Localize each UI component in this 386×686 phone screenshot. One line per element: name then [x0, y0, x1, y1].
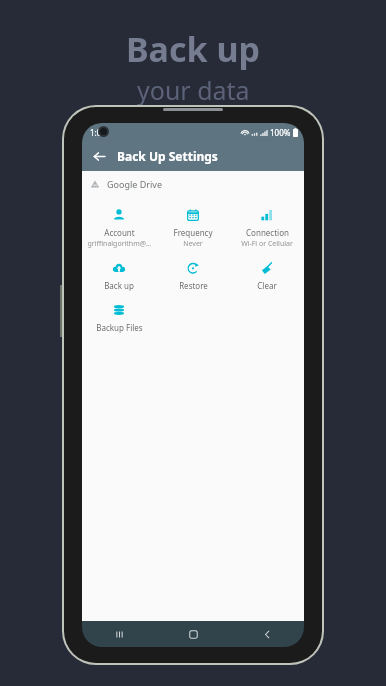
staticText: 1:00: [90, 127, 106, 138]
button[interactable]: Back: [230, 621, 304, 647]
staticText: Wi-Fi or Cellular: [241, 239, 293, 249]
button[interactable]: Restore: [156, 254, 230, 296]
button[interactable]: Back up: [82, 254, 156, 296]
staticText: Account: [104, 227, 135, 238]
staticText: griffinalgorithm@…: [87, 239, 152, 249]
staticText: Restore: [179, 280, 208, 291]
staticText: Back Up Settings: [117, 148, 218, 164]
staticText: Back up: [126, 26, 261, 72]
button[interactable]: Connection: [230, 201, 304, 254]
button[interactable]: Recent apps: [82, 621, 156, 647]
staticText: Google Drive: [107, 178, 162, 190]
button[interactable]: Home: [156, 621, 230, 647]
staticText: Connection: [246, 227, 289, 238]
staticText: Back up: [104, 280, 134, 291]
staticText: Frequency: [173, 227, 213, 238]
button[interactable]: Backup Files: [82, 296, 156, 338]
button[interactable]: Account: [82, 201, 156, 254]
staticText: your data: [137, 73, 250, 107]
button[interactable]: Google Drive: [82, 171, 304, 197]
button[interactable]: Clear: [230, 254, 304, 296]
staticText: Never: [183, 239, 203, 249]
staticText: 100%: [270, 127, 291, 138]
button[interactable]: Frequency: [156, 201, 230, 254]
staticText: Backup Files: [96, 322, 143, 333]
button[interactable]: Back: [87, 144, 111, 168]
staticText: Clear: [257, 280, 277, 291]
